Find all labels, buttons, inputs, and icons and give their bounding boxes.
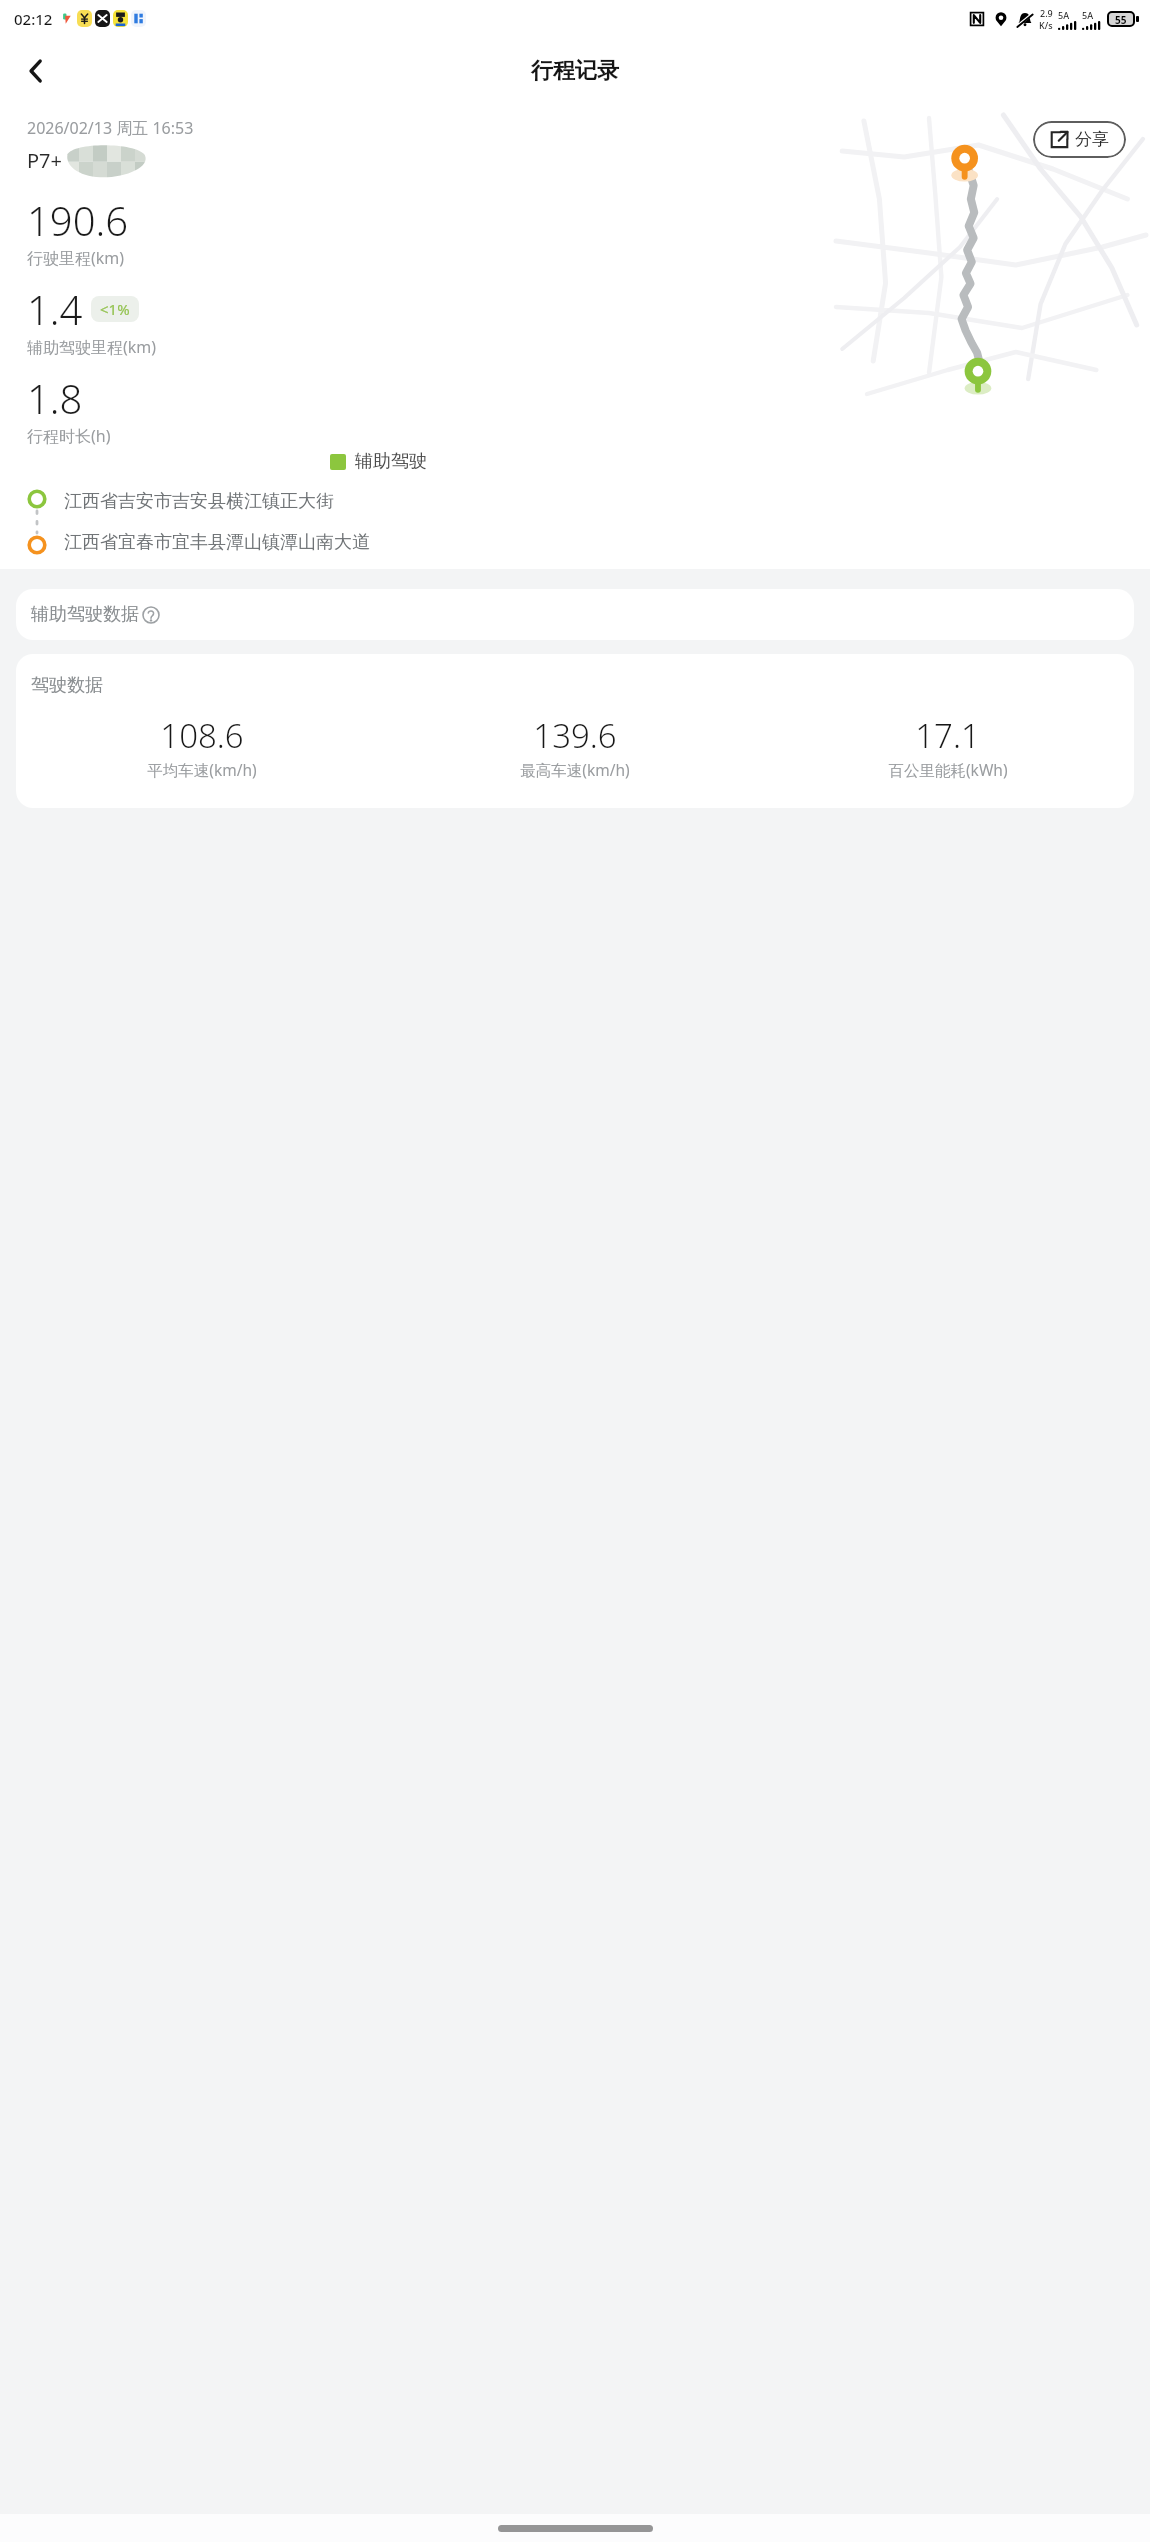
- staticText: 108.6: [160, 713, 244, 758]
- staticText: 190.6: [27, 193, 129, 247]
- staticText: 江西省吉安市吉安县横江镇正大街: [64, 490, 334, 513]
- button[interactable]: 驾驶数据: [16, 654, 1134, 808]
- staticText: 1.4: [27, 282, 83, 336]
- staticText: 55: [1115, 13, 1127, 25]
- staticText: 5A: [1058, 9, 1070, 21]
- staticText: 行程记录: [531, 57, 619, 85]
- staticText: 最高车速(km/h): [520, 759, 630, 780]
- staticText: 1.8: [27, 371, 83, 425]
- staticText: 139.6: [533, 713, 617, 758]
- staticText: K/s: [1039, 19, 1053, 31]
- staticText: <1%: [100, 299, 130, 319]
- staticText: 江西省宜春市宜丰县潭山镇潭山南大道: [64, 531, 370, 554]
- staticText: 辅助驾驶数据: [31, 603, 139, 626]
- staticText: 驾驶数据: [31, 674, 103, 697]
- staticText: 行驶里程(km): [27, 247, 125, 269]
- button[interactable]: 分享: [1033, 121, 1126, 158]
- staticText: 2026/02/13 周五 16:53: [27, 117, 194, 139]
- staticText: 平均车速(km/h): [147, 759, 257, 780]
- staticText: 辅助驾驶: [355, 450, 427, 473]
- button[interactable]: 辅助驾驶数据: [16, 589, 1134, 640]
- button[interactable]: Back: [8, 43, 64, 99]
- staticText: 17.1: [915, 713, 980, 758]
- staticText: 辅助驾驶里程(km): [27, 336, 157, 358]
- staticText: P7+: [27, 147, 62, 174]
- staticText: 百公里能耗(kWh): [888, 759, 1008, 780]
- staticText: 2.9: [1040, 7, 1053, 19]
- staticText: 分享: [1075, 129, 1109, 150]
- staticText: 行程时长(h): [27, 425, 111, 447]
- staticText: 02:12: [14, 9, 53, 29]
- staticText: 5A: [1082, 9, 1094, 21]
